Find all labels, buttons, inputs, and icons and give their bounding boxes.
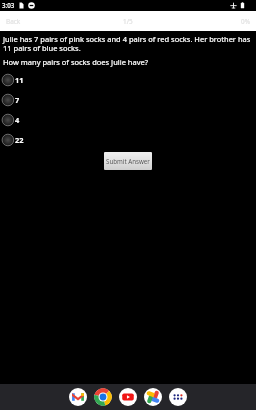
staticText: Back xyxy=(6,17,21,26)
staticText: How many pairs of socks does Julie have? xyxy=(3,57,148,67)
staticText: 4 xyxy=(15,115,20,125)
staticText: 1/5 xyxy=(123,17,133,26)
staticText: 22 xyxy=(15,135,24,145)
staticText: Julie has 7 pairs of pink socks and 4 pa… xyxy=(3,34,254,53)
staticText: 7 xyxy=(15,95,20,105)
button[interactable]: YouTube xyxy=(119,388,137,406)
button[interactable]: 11 xyxy=(3,70,254,90)
staticText: 11 xyxy=(15,75,24,85)
button[interactable]: Gmail xyxy=(69,388,87,406)
button[interactable]: Chrome xyxy=(94,388,112,406)
button[interactable]: 4 xyxy=(3,110,254,130)
button[interactable]: Back xyxy=(0,14,27,29)
button[interactable]: Photos xyxy=(144,388,162,406)
button[interactable]: 22 xyxy=(3,130,254,150)
staticText: Submit Answer xyxy=(106,157,150,165)
button[interactable]: 7 xyxy=(3,90,254,110)
staticText: 0% xyxy=(241,17,250,26)
button[interactable]: Submit Answer xyxy=(104,152,152,170)
button[interactable]: All apps xyxy=(169,388,187,406)
staticText: 3:03 xyxy=(2,1,15,9)
